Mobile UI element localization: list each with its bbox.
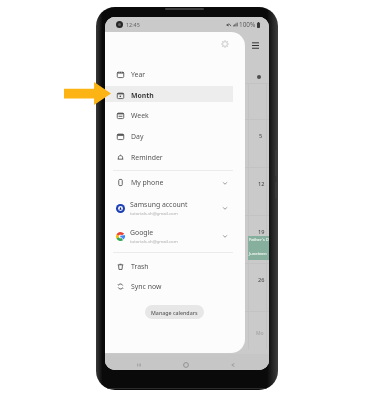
staticText: tutorials.sh@gmail.com — [130, 210, 178, 216]
staticText: Mo — [256, 330, 264, 337]
other: Pointer arrow — [64, 82, 111, 105]
staticText: tutorials.sh@gmail.com — [130, 238, 178, 244]
button[interactable]: Settings — [221, 40, 229, 48]
button[interactable]: Samsung account — [105, 195, 245, 221]
staticText: Sync now — [131, 282, 162, 291]
staticText: 12:45 — [126, 21, 140, 28]
staticText: 26 — [258, 276, 265, 284]
button[interactable]: My phone — [105, 172, 245, 193]
staticText: Trash — [131, 262, 149, 271]
button[interactable]: Menu — [252, 42, 259, 49]
button[interactable]: Google — [105, 223, 245, 249]
button[interactable]: Back — [229, 361, 237, 369]
staticText: Manage calendars — [151, 309, 198, 316]
button[interactable]: Day — [105, 126, 245, 147]
button[interactable]: Trash — [105, 256, 245, 277]
button[interactable]: Reminder — [105, 147, 245, 168]
staticText: 19 — [258, 228, 265, 236]
staticText: Day — [131, 132, 144, 141]
staticText: Father's D — [249, 237, 269, 243]
staticText: Samsung account — [130, 200, 188, 209]
staticText: Week — [131, 111, 149, 120]
staticText: My phone — [131, 178, 164, 187]
button[interactable]: Month — [105, 85, 245, 106]
button[interactable]: Home — [182, 361, 190, 369]
button[interactable]: Year — [105, 64, 245, 85]
staticText: Reminder — [131, 153, 163, 162]
staticText: 12 — [258, 180, 265, 188]
staticText: Juneteen — [249, 251, 267, 257]
button[interactable]: Week — [105, 105, 245, 126]
staticText: 100% — [239, 20, 256, 29]
staticText: 5 — [259, 132, 263, 140]
button[interactable]: Sync now — [105, 276, 245, 297]
button[interactable]: Manage calendars — [145, 305, 204, 319]
staticText: Year — [131, 70, 146, 79]
button[interactable]: Recents — [135, 361, 143, 369]
staticText: Google — [130, 228, 154, 237]
staticText: Month — [131, 91, 154, 100]
